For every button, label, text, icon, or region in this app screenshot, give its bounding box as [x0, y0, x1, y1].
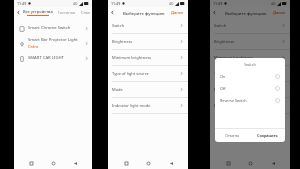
- button[interactable]: Далее: [171, 10, 188, 15]
- staticText: Спальня: [81, 10, 92, 15]
- button[interactable]: Спальня: [81, 10, 92, 15]
- staticText: Mode: [112, 87, 179, 92]
- staticText: Off: [220, 86, 275, 91]
- staticText: Выберите функцию: [225, 10, 267, 16]
- button[interactable]: Brightness: [108, 34, 188, 49]
- button[interactable]: Recent apps: [26, 158, 36, 168]
- button[interactable]: Mode: [108, 82, 188, 97]
- button[interactable]: Switch: [210, 18, 290, 33]
- button[interactable]: Reverse Switch: [215, 94, 285, 106]
- staticText: Brightness: [112, 39, 179, 44]
- staticText: On: [220, 74, 275, 79]
- staticText: Switch: [112, 23, 179, 28]
- button[interactable]: Home: [48, 158, 58, 168]
- staticText: Switch: [215, 62, 285, 67]
- button[interactable]: Indicator light mode: [210, 98, 290, 113]
- staticText: Brightness: [214, 39, 281, 44]
- button[interactable]: Switch: [108, 18, 188, 33]
- button[interactable]: SMART CAR LIGHT: [14, 51, 92, 65]
- button[interactable]: Back: [108, 8, 117, 17]
- staticText: Далее: [273, 10, 286, 15]
- staticText: Type of light source: [112, 71, 179, 76]
- staticText: 11:49: [213, 1, 223, 6]
- staticText: Далее: [171, 10, 184, 15]
- staticText: Отмена: [225, 133, 240, 138]
- button[interactable]: Type of light source: [108, 66, 188, 81]
- staticText: Smart Chrome Switch: [28, 25, 71, 31]
- staticText: 4G: [271, 1, 276, 6]
- button[interactable]: Indicator light mode: [108, 98, 188, 113]
- button[interactable]: Сохранить: [250, 129, 285, 142]
- button[interactable]: Smart Bar Projector Light: [14, 35, 92, 51]
- staticText: Online: [28, 44, 39, 49]
- staticText: Indicator light mode: [214, 103, 281, 108]
- button[interactable]: Back: [70, 158, 80, 168]
- staticText: Reverse Switch: [220, 98, 275, 103]
- button[interactable]: Back: [268, 158, 278, 168]
- button[interactable]: On: [215, 70, 285, 82]
- staticText: 11:49: [111, 1, 121, 6]
- staticText: Smart Bar Projector Light: [28, 37, 78, 43]
- staticText: Type of light source: [214, 71, 281, 76]
- staticText: 4G: [73, 1, 78, 6]
- button[interactable]: Mode: [210, 82, 290, 97]
- staticText: 11:49: [17, 1, 27, 6]
- button[interactable]: Гостиная: [58, 10, 76, 15]
- staticText: Switch: [214, 23, 281, 28]
- button[interactable]: Minimum brightness: [210, 50, 290, 65]
- staticText: SMART CAR LIGHT: [28, 55, 64, 61]
- button[interactable]: Back: [14, 8, 23, 17]
- staticText: Сохранить: [257, 133, 278, 138]
- button[interactable]: Smart Chrome Switch: [14, 21, 92, 35]
- button[interactable]: Minimum brightness: [108, 50, 188, 65]
- staticText: Все устройства: [23, 9, 53, 14]
- staticText: Выберите функцию: [123, 10, 165, 16]
- staticText: Indicator light mode: [112, 103, 179, 108]
- button[interactable]: Back: [166, 158, 176, 168]
- staticText: Minimum brightness: [112, 55, 179, 60]
- staticText: 4G: [169, 1, 174, 6]
- staticText: Гостиная: [58, 10, 76, 15]
- button[interactable]: Home: [143, 158, 153, 168]
- button[interactable]: Все устройства: [23, 9, 53, 16]
- staticText: Mode: [214, 87, 281, 92]
- button[interactable]: Отмена: [215, 129, 250, 142]
- button[interactable]: Type of light source: [210, 66, 290, 81]
- button[interactable]: Recent apps: [223, 158, 233, 168]
- button[interactable]: Home: [245, 158, 255, 168]
- button[interactable]: Brightness: [210, 34, 290, 49]
- button[interactable]: Off: [215, 82, 285, 94]
- button[interactable]: Back: [210, 8, 219, 17]
- button[interactable]: Recent apps: [121, 158, 131, 168]
- staticText: Minimum brightness: [214, 55, 281, 60]
- button[interactable]: Далее: [273, 10, 290, 15]
